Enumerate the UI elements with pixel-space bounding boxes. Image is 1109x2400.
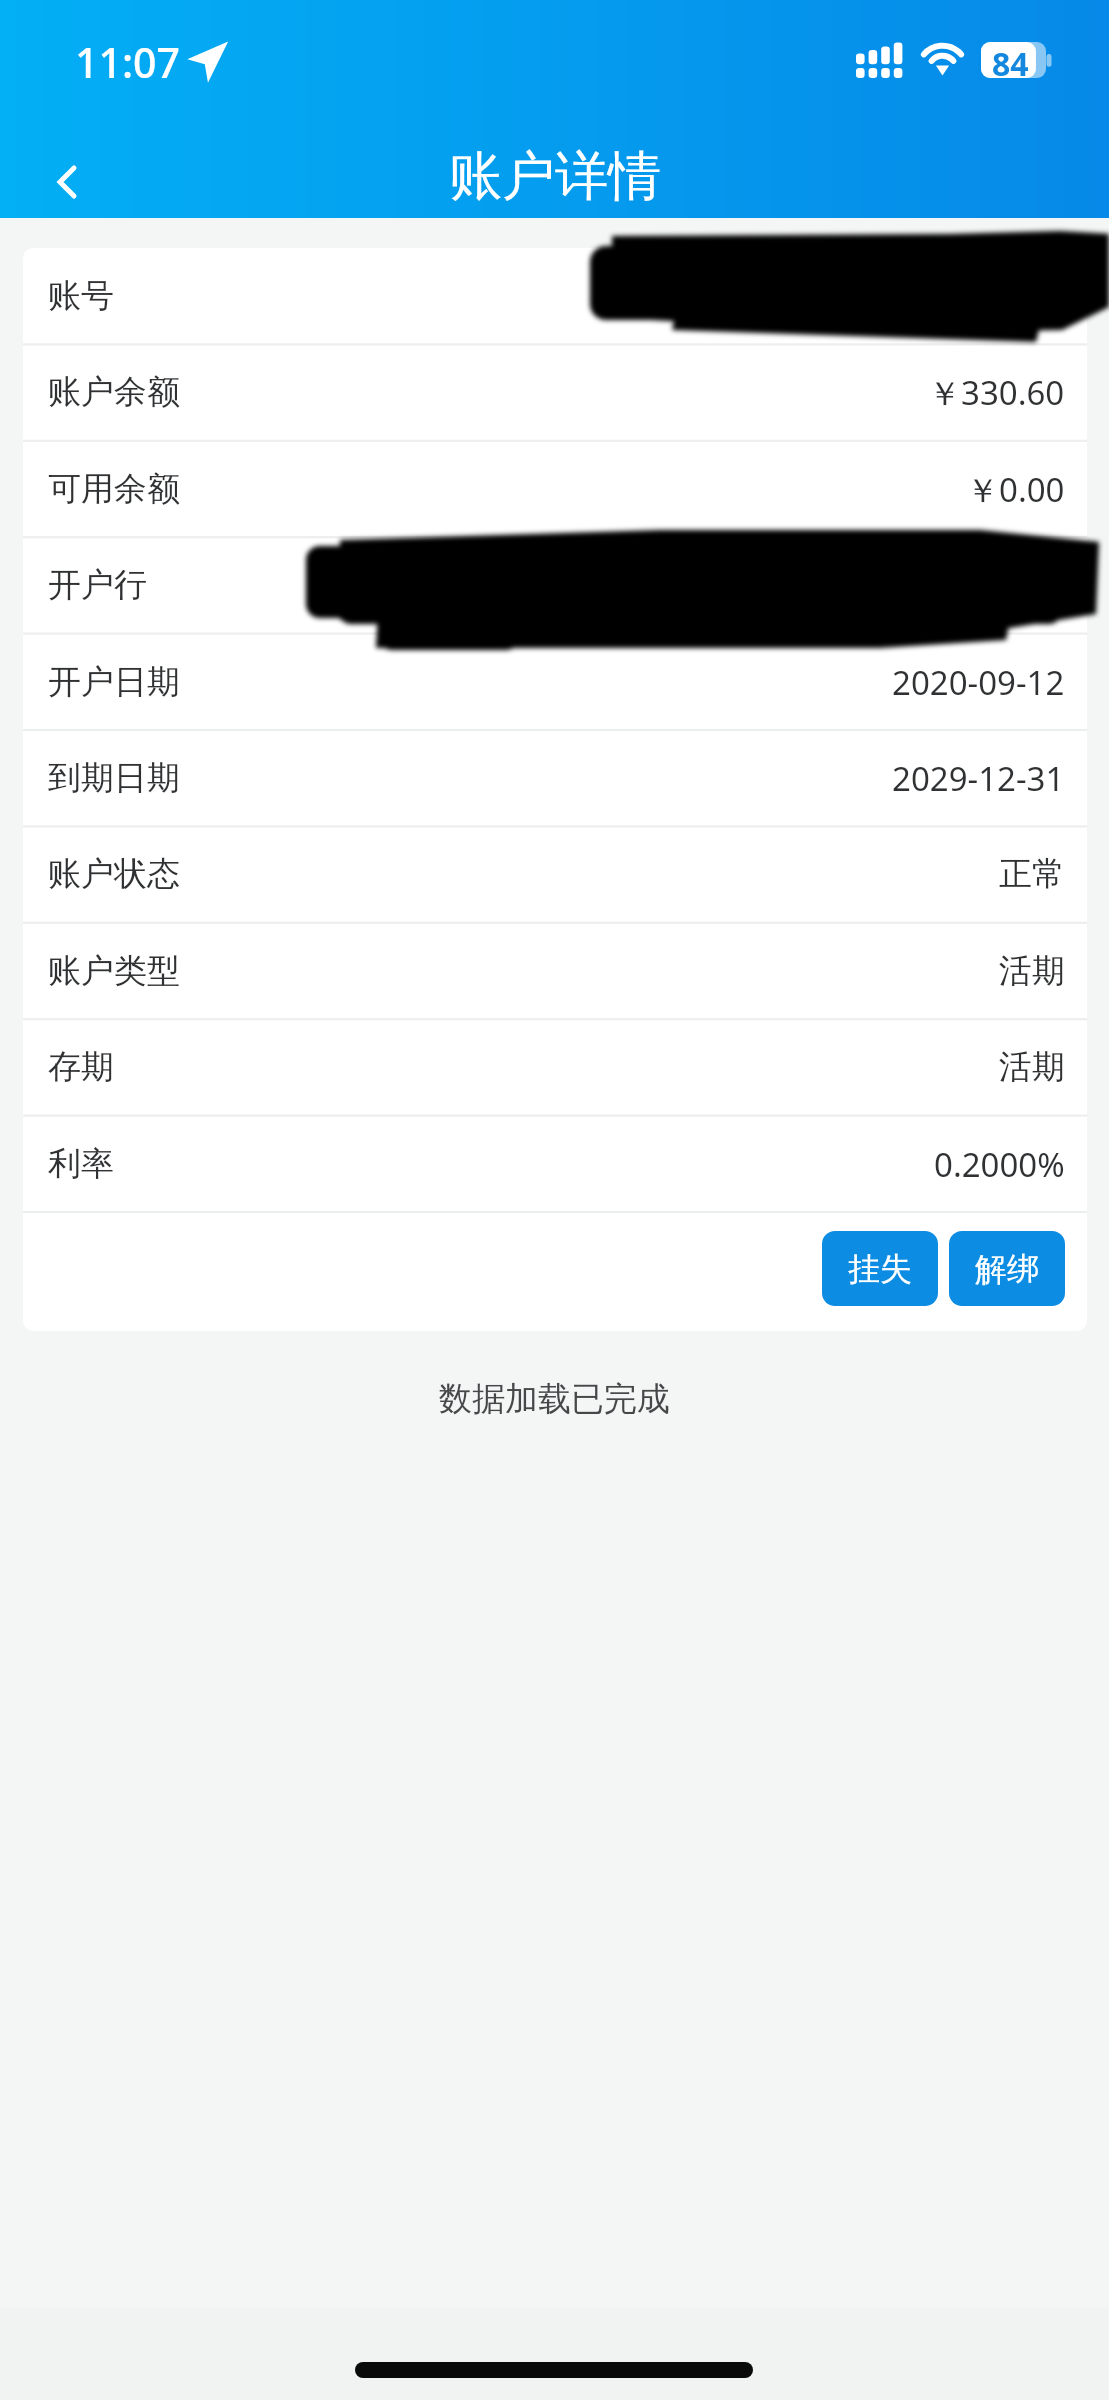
staticText: 解绑 [975, 1249, 1039, 1289]
button[interactable]: 利率 [23, 1116, 1087, 1212]
staticText: 到期日期 [48, 757, 180, 799]
button[interactable]: 挂失 [822, 1231, 938, 1306]
staticText: 利率 [48, 1143, 114, 1185]
staticText: 数据加载已完成 [0, 1378, 1109, 1420]
button[interactable]: 账户类型 [23, 923, 1087, 1019]
staticText: 2020-09-12 [892, 660, 1065, 705]
staticText: ￥330.60 [928, 370, 1065, 415]
staticText: 账号 [48, 275, 114, 317]
button[interactable]: 账户余额 [23, 344, 1087, 440]
staticText: 0.2000% [934, 1142, 1065, 1187]
staticText: 活期 [999, 950, 1065, 992]
button[interactable]: 开户行 [23, 537, 1087, 633]
button[interactable]: 账号 [23, 248, 1087, 344]
staticText: 2029-12-31 [892, 756, 1065, 801]
button[interactable]: 可用余额 [23, 441, 1087, 537]
button[interactable]: 解绑 [949, 1231, 1065, 1306]
button[interactable]: 账户状态 [23, 826, 1087, 922]
staticText: 活期 [999, 1046, 1065, 1088]
staticText: 存期 [48, 1046, 114, 1088]
staticText: 挂失 [848, 1249, 912, 1289]
staticText: 开户日期 [48, 661, 180, 703]
staticText: 开户行 [48, 564, 147, 606]
staticText: 账户状态 [48, 853, 180, 895]
staticText: 账户类型 [48, 950, 180, 992]
staticText: 11:07 [75, 34, 180, 90]
button[interactable]: 到期日期 [23, 730, 1087, 826]
staticText: 84 [992, 42, 1029, 78]
staticText: ￥0.00 [966, 467, 1065, 512]
button[interactable]: 开户日期 [23, 634, 1087, 730]
button[interactable]: Back [14, 136, 120, 218]
button[interactable]: 存期 [23, 1019, 1087, 1115]
staticText: 账户余额 [48, 371, 180, 413]
staticText: 账户详情 [449, 143, 661, 210]
staticText: 可用余额 [48, 468, 180, 510]
staticText: 正常 [999, 853, 1065, 895]
